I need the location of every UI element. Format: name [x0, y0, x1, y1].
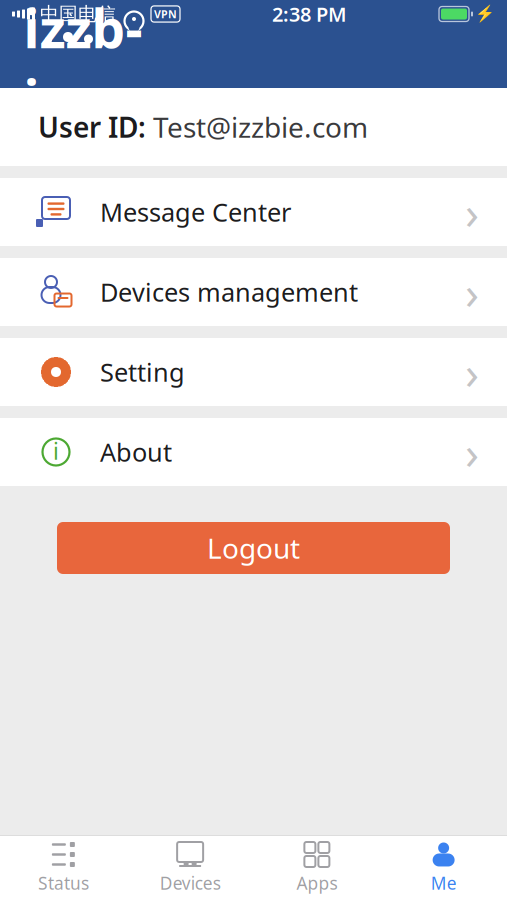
button[interactable]: Devices: [127, 836, 254, 900]
staticText: i: [53, 436, 59, 466]
staticText: ›: [465, 182, 479, 242]
button[interactable]: Status: [0, 836, 127, 900]
staticText: VPN: [154, 7, 177, 21]
button[interactable]: Setting: [0, 338, 507, 406]
staticText: Apps: [296, 871, 337, 894]
staticText: Devices management: [100, 275, 358, 309]
staticText: ›: [465, 342, 479, 402]
staticText: Message Center: [100, 195, 291, 229]
staticText: izzbie: [23, 0, 142, 134]
staticText: ›: [465, 422, 479, 482]
staticText: Setting: [100, 355, 185, 389]
staticText: User ID:: [38, 108, 153, 146]
staticText: 2:38 PM: [272, 1, 347, 27]
button[interactable]: Apps: [253, 836, 380, 900]
staticText: ›: [465, 262, 479, 322]
staticText: About: [100, 435, 172, 469]
button[interactable]: i: [0, 418, 507, 486]
staticText: Test@izzbie.com: [153, 108, 368, 146]
staticText: Logout: [207, 529, 300, 567]
staticText: Status: [38, 871, 89, 894]
staticText: ⚡: [475, 5, 495, 23]
staticText: Devices: [160, 871, 221, 894]
staticText: 中国电信: [40, 2, 116, 25]
button[interactable]: Logout: [57, 522, 450, 574]
button[interactable]: Me: [380, 836, 507, 900]
staticText: Me: [431, 871, 457, 894]
button[interactable]: Devices management: [0, 258, 507, 326]
button[interactable]: Message Center: [0, 178, 507, 246]
